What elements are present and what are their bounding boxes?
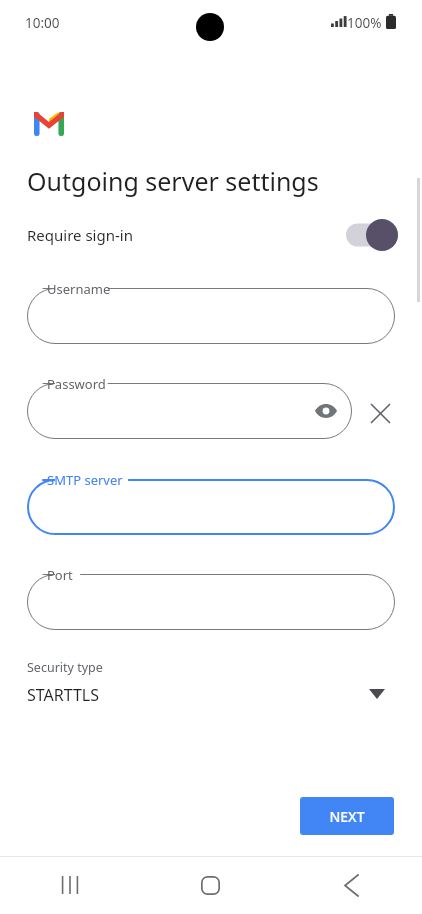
staticText: Security type bbox=[27, 659, 103, 676]
staticText: Username bbox=[47, 280, 111, 298]
button[interactable]: Require sign-in bbox=[0, 213, 422, 257]
button[interactable]: Security type bbox=[0, 652, 422, 718]
button[interactable]: Require sign-in toggle bbox=[346, 219, 398, 251]
staticText: 100% bbox=[347, 14, 382, 32]
staticText: Port bbox=[47, 566, 73, 584]
button[interactable]: Home bbox=[140, 856, 281, 914]
button[interactable]: Port bbox=[27, 574, 395, 630]
button[interactable]: Recent apps bbox=[0, 856, 140, 914]
button[interactable]: Username bbox=[27, 288, 395, 344]
staticText: 10:00 bbox=[25, 14, 60, 32]
button[interactable]: SMTP server bbox=[27, 479, 395, 535]
button[interactable]: NEXT bbox=[300, 797, 394, 835]
staticText: Outgoing server settings bbox=[27, 164, 319, 198]
staticText: Password bbox=[47, 375, 106, 393]
button[interactable]: Password bbox=[27, 383, 352, 439]
staticText: NEXT bbox=[329, 807, 365, 826]
staticText: SMTP server bbox=[47, 471, 123, 489]
staticText: STARTTLS bbox=[27, 684, 100, 706]
button[interactable]: Clear bbox=[363, 396, 397, 430]
button[interactable]: Back bbox=[281, 856, 422, 914]
staticText: Require sign-in bbox=[27, 225, 133, 245]
button[interactable]: Show password bbox=[308, 393, 344, 429]
